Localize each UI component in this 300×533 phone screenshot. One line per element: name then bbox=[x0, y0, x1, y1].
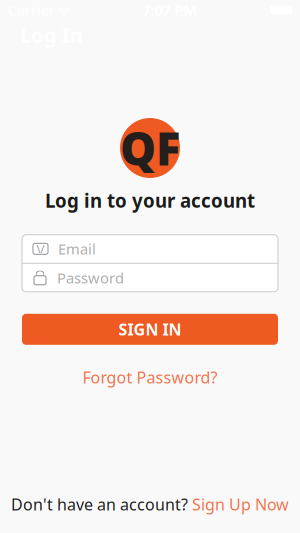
button[interactable]: Forgot Password? bbox=[72, 363, 227, 392]
button[interactable]: SIGN IN bbox=[22, 314, 278, 345]
button[interactable]: \/ bbox=[22, 235, 278, 263]
staticText: \/ bbox=[36, 242, 44, 256]
staticText: Sign Up Now bbox=[192, 494, 289, 515]
button[interactable]: Don't have an account? bbox=[0, 488, 300, 521]
staticText: Email bbox=[58, 239, 96, 259]
staticText: SIGN IN bbox=[118, 319, 181, 340]
staticText: Password bbox=[57, 268, 124, 288]
staticText: Don't have an account? bbox=[11, 494, 188, 515]
staticText: QF bbox=[120, 118, 180, 178]
button[interactable]: Password bbox=[22, 264, 278, 292]
staticText: Forgot Password? bbox=[82, 367, 217, 388]
staticText: Log in to your account bbox=[45, 188, 255, 213]
